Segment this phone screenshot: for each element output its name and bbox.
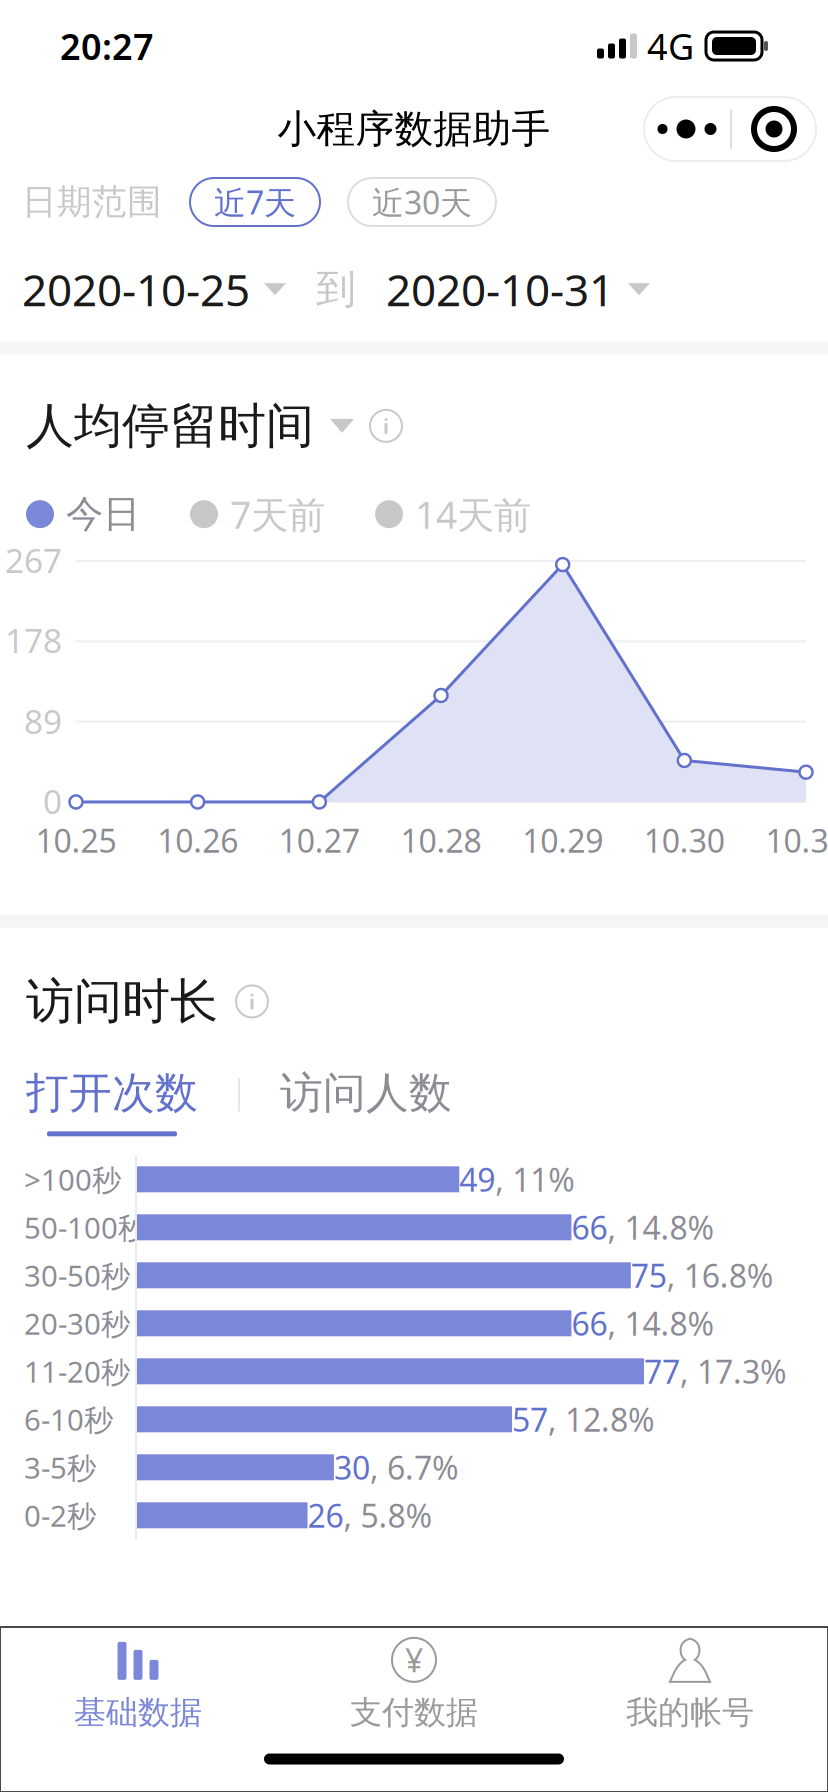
staticText: 26 [307,1494,343,1537]
button[interactable]: More [644,97,816,161]
staticText: 日期范围 [22,181,162,223]
staticText: 3-5秒 [24,1448,96,1487]
staticText: 我的帐号 [626,1693,754,1732]
staticText: 20:27 [60,22,154,70]
staticText: 打开次数 [26,1067,198,1119]
staticText: , 16.8% [667,1254,774,1297]
staticText: 178 [5,618,62,662]
staticText: 10.31 [765,819,828,861]
staticText: 小程序数据助手 [277,105,550,153]
staticText: , 11% [495,1158,575,1201]
staticText: , 5.8% [343,1494,432,1537]
button[interactable]: 访问人数 [280,1067,452,1136]
staticText: 访问时长 [26,972,218,1031]
staticText: 10.26 [157,819,238,861]
staticText: , 14.8% [607,1206,714,1249]
button[interactable]: 近30天 [348,178,496,226]
staticText: 267 [5,538,62,582]
staticText: 6-10秒 [24,1400,113,1439]
staticText: 近7天 [214,181,296,223]
staticText: 30-50秒 [24,1256,130,1295]
staticText: 7天前 [230,489,325,539]
button[interactable]: 我的帐号 [552,1623,828,1748]
staticText: 访问人数 [280,1067,452,1119]
staticText: 66 [571,1302,607,1345]
staticText: 10.28 [400,819,481,861]
staticText: 89 [24,699,62,743]
staticText: 4G [647,22,694,70]
staticText: >100秒 [24,1160,121,1199]
staticText: 49 [459,1158,495,1201]
staticText: 66 [571,1206,607,1249]
staticText: 50-100秒 [24,1208,147,1247]
staticText: 2020-10-31 [386,260,614,318]
button[interactable]: 打开次数 [26,1067,198,1136]
staticText: 10.30 [644,819,725,861]
button[interactable]: 基础数据 [0,1623,276,1748]
staticText: 到 [316,265,356,314]
staticText: 今日 [66,491,140,537]
staticText: 77 [644,1350,680,1393]
button[interactable]: ¥ [276,1623,552,1748]
staticText: 支付数据 [350,1693,478,1732]
staticText: , 12.8% [548,1398,655,1441]
staticText: 30 [334,1446,370,1489]
staticText: 11-20秒 [24,1352,130,1391]
staticText: 基础数据 [74,1693,202,1732]
staticText: 75 [631,1254,667,1297]
staticText: 14天前 [415,489,531,539]
staticText: 近30天 [372,181,472,223]
staticText: 57 [512,1398,548,1441]
staticText: 0-2秒 [24,1496,96,1535]
button[interactable]: 近7天 [190,178,320,226]
staticText: ¥ [405,1639,423,1681]
staticText: 10.29 [522,819,603,861]
staticText: 2020-10-25 [22,260,250,318]
button[interactable]: 2020-10-25 [22,260,286,318]
staticText: 20-30秒 [24,1304,130,1343]
staticText: , 17.3% [680,1350,787,1393]
button[interactable]: 2020-10-31 [386,260,650,318]
staticText: 0 [43,779,62,823]
staticText: 10.27 [279,819,360,861]
staticText: , 14.8% [607,1302,714,1345]
staticText: 人均停留时间 [26,396,314,455]
staticText: , 6.7% [370,1446,459,1489]
staticText: 10.25 [35,819,116,861]
